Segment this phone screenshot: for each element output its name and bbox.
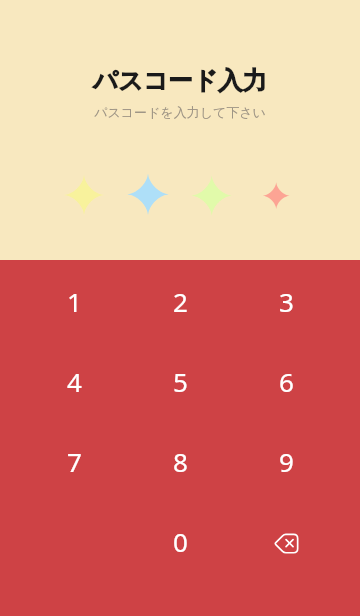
staticText: 4 — [67, 364, 82, 399]
staticText: パスコードを入力して下さい — [94, 104, 266, 120]
staticText: 2 — [173, 284, 188, 319]
staticText: 5 — [173, 364, 188, 399]
button[interactable]: Backspace — [246, 501, 326, 581]
button[interactable]: 4 — [34, 341, 114, 421]
staticText: パスコード入力 — [93, 65, 267, 96]
button[interactable]: 3 — [246, 261, 326, 341]
button[interactable]: 6 — [246, 341, 326, 421]
button[interactable]: 8 — [140, 421, 220, 501]
staticText: 0 — [173, 524, 188, 559]
staticText: 9 — [279, 444, 294, 479]
button[interactable]: 0 — [140, 501, 220, 581]
staticText: 1 — [67, 284, 82, 319]
button[interactable]: 5 — [140, 341, 220, 421]
staticText: 3 — [279, 284, 294, 319]
staticText: 7 — [67, 444, 82, 479]
button[interactable]: 9 — [246, 421, 326, 501]
button[interactable]: 7 — [34, 421, 114, 501]
staticText: 6 — [279, 364, 294, 399]
staticText: 8 — [173, 444, 188, 479]
button[interactable]: 2 — [140, 261, 220, 341]
button[interactable]: 1 — [34, 261, 114, 341]
